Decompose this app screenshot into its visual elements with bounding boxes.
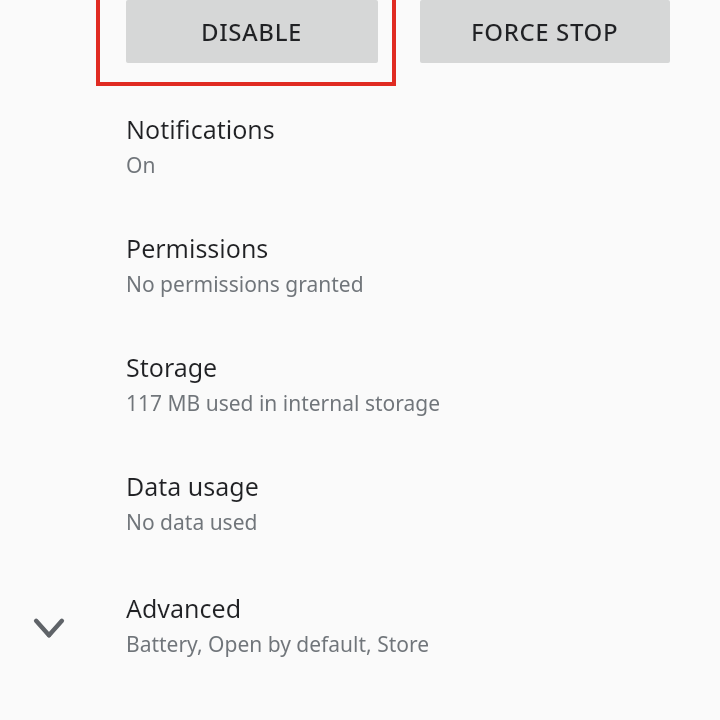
button[interactable]: Expand advanced settings <box>0 591 720 677</box>
other: Expand advanced settings <box>30 609 68 647</box>
button[interactable]: Notifications <box>0 112 720 198</box>
staticText: FORCE STOP <box>471 15 619 48</box>
staticText: Notifications <box>126 112 275 146</box>
staticText: Permissions <box>126 231 269 265</box>
staticText: No data used <box>126 508 258 537</box>
staticText: Data usage <box>126 469 259 503</box>
button[interactable]: Permissions <box>0 231 720 317</box>
staticText: Advanced <box>126 591 242 625</box>
staticText: Battery, Open by default, Store <box>126 630 430 659</box>
button[interactable]: Data usage <box>0 469 720 555</box>
staticText: No permissions granted <box>126 270 364 299</box>
staticText: 117 MB used in internal storage <box>126 389 441 418</box>
button[interactable]: DISABLE <box>126 0 378 63</box>
staticText: On <box>126 151 156 180</box>
button[interactable]: Storage <box>0 350 720 436</box>
staticText: DISABLE <box>201 15 303 48</box>
button[interactable]: FORCE STOP <box>420 0 670 63</box>
staticText: Storage <box>126 350 218 384</box>
